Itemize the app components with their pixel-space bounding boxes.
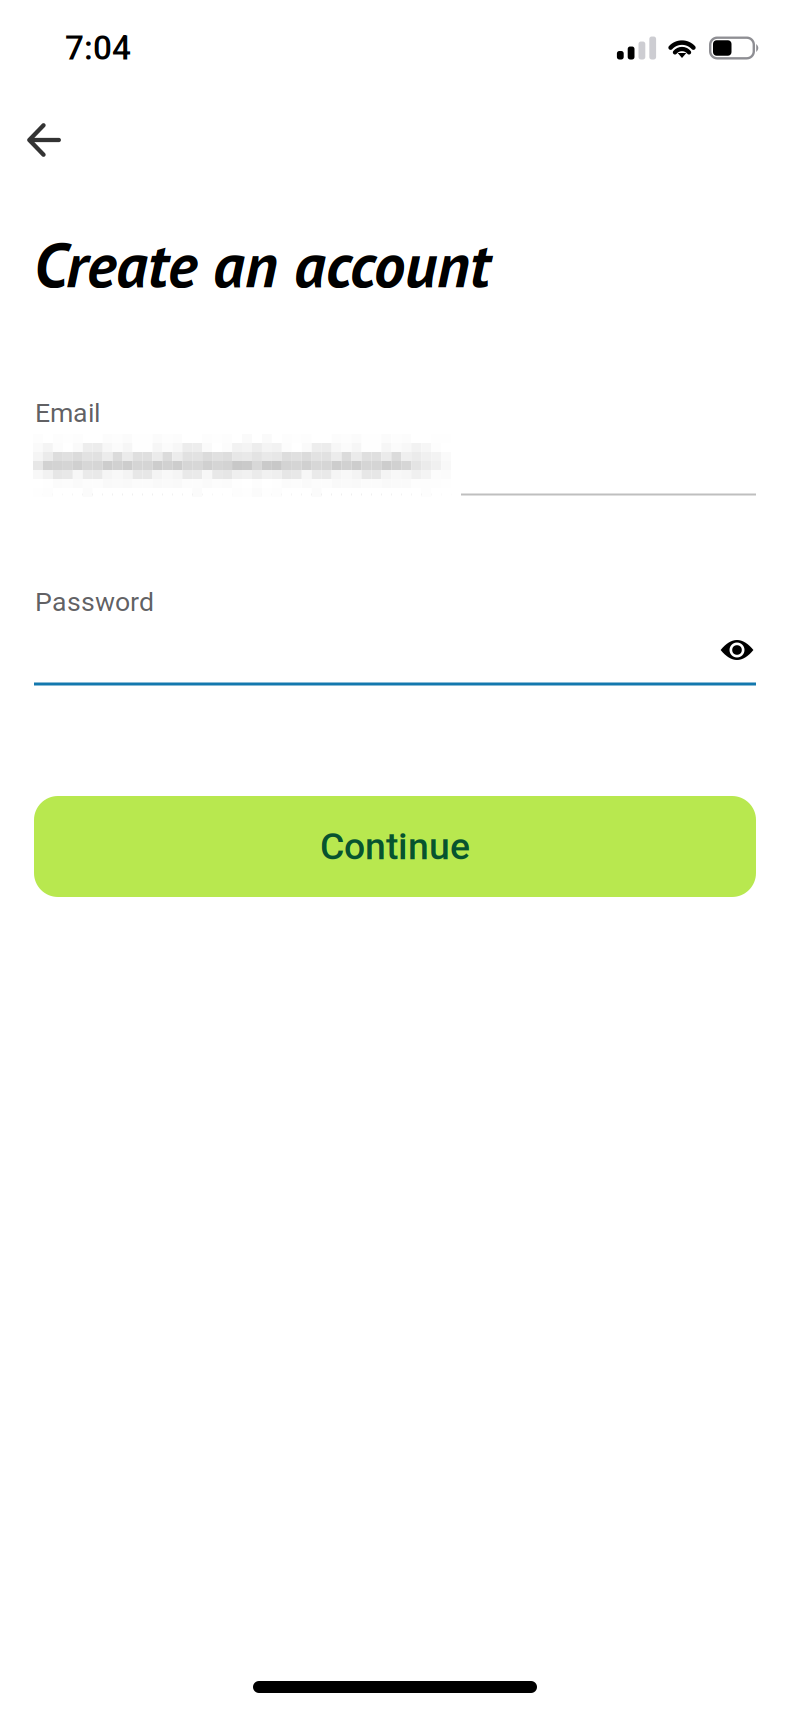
button[interactable]: Continue (34, 796, 756, 897)
button[interactable]: Show password (708, 624, 766, 676)
staticText: 7:04 (65, 28, 131, 68)
staticText: Continue (320, 825, 470, 868)
staticText: Password (35, 586, 154, 618)
staticText: Email (35, 397, 100, 429)
button[interactable]: Back (1, 97, 87, 183)
staticText: Create an account (34, 223, 490, 305)
